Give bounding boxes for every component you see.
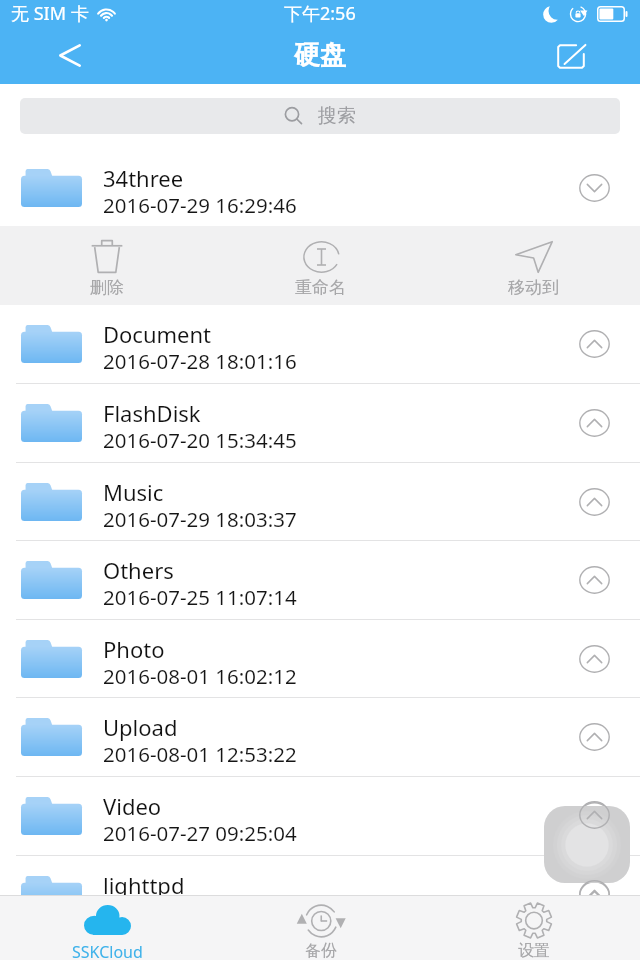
button[interactable]: 删除 <box>0 226 214 305</box>
staticText: 硬盘 <box>294 39 346 72</box>
staticText: 移动到 <box>508 277 559 298</box>
button[interactable]: Edit <box>540 30 640 84</box>
button[interactable]: Expand <box>566 620 640 697</box>
button[interactable]: SSKCloud <box>0 896 214 960</box>
button[interactable]: Expand <box>566 856 640 933</box>
button[interactable]: Others <box>0 541 640 619</box>
button[interactable]: Music <box>0 463 640 540</box>
staticText: Upload <box>103 712 178 742</box>
staticText: 2016-07-28 18:01:16 <box>103 347 297 375</box>
staticText: Video <box>103 791 162 821</box>
button[interactable]: lighttpd <box>0 856 640 933</box>
button[interactable]: 34three <box>0 150 640 226</box>
staticText: 删除 <box>90 277 124 298</box>
staticText: 搜索 <box>318 104 356 128</box>
button[interactable]: Expand <box>566 305 640 383</box>
staticText: 无 SIM 卡 <box>11 1 89 26</box>
staticText: 2016-08-01 16:02:12 <box>103 662 297 690</box>
button[interactable]: Expand <box>566 384 640 462</box>
staticText: Music <box>103 477 164 507</box>
button[interactable]: Expand <box>566 541 640 619</box>
staticText: 重命名 <box>295 277 346 298</box>
staticText: 2016-08-01 12:53:22 <box>103 740 297 768</box>
staticText: 2016-07-20 15:34:45 <box>103 426 297 454</box>
staticText: 2016-07-27 09:25:04 <box>103 819 297 847</box>
staticText: 2016-07-25 11:07:14 <box>103 583 297 611</box>
staticText: 34three <box>103 163 184 193</box>
button[interactable]: 重命名 <box>214 226 427 305</box>
staticText: 2016-07-26 11:12:13 <box>103 898 297 926</box>
staticText: 下午2:56 <box>284 1 356 26</box>
button[interactable]: Expand <box>566 777 640 855</box>
button[interactable]: FlashDisk <box>0 384 640 462</box>
button[interactable]: Back <box>0 30 110 84</box>
button[interactable]: Expand <box>566 463 640 540</box>
staticText: 备份 <box>305 941 337 960</box>
button[interactable]: Assistive touch <box>544 806 630 883</box>
button[interactable]: 搜索 <box>20 98 620 134</box>
staticText: FlashDisk <box>103 398 201 428</box>
button[interactable]: Video <box>0 777 640 855</box>
staticText: Document <box>103 319 212 349</box>
staticText: 设置 <box>518 941 550 960</box>
staticText: lighttpd <box>103 870 185 900</box>
button[interactable]: 移动到 <box>427 226 640 305</box>
button[interactable]: Document <box>0 305 640 383</box>
staticText: Photo <box>103 634 165 664</box>
staticText: 2016-07-29 16:29:46 <box>103 191 297 219</box>
staticText: SSKCloud <box>72 941 143 960</box>
button[interactable]: 设置 <box>427 896 640 960</box>
staticText: Others <box>103 555 174 585</box>
button[interactable]: 备份 <box>214 896 427 960</box>
button[interactable]: Collapse <box>566 150 640 226</box>
button[interactable]: Photo <box>0 620 640 697</box>
button[interactable]: Upload <box>0 698 640 776</box>
staticText: 2016-07-29 18:03:37 <box>103 505 297 533</box>
button[interactable]: Expand <box>566 698 640 776</box>
